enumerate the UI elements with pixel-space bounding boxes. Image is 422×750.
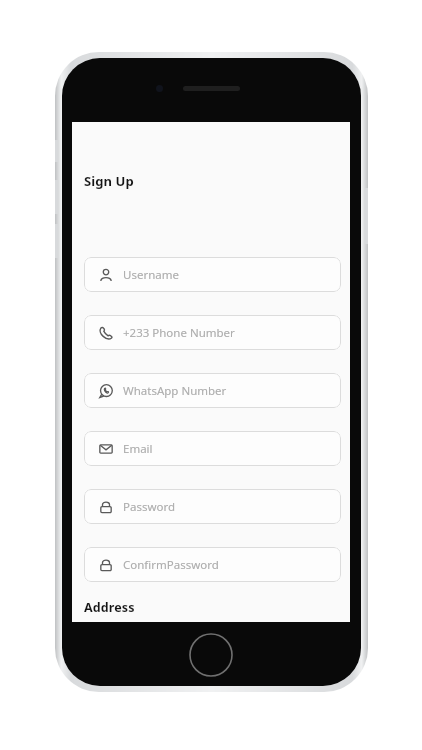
button[interactable]: Username (84, 257, 341, 292)
button[interactable]: WhatsApp Number (84, 373, 341, 408)
staticText: WhatsApp Number (123, 383, 227, 399)
staticText: ConfirmPassword (123, 557, 219, 573)
button[interactable]: Password (84, 489, 341, 524)
staticText: Password (123, 499, 176, 515)
button[interactable]: +233 Phone Number (84, 315, 341, 350)
staticText: Username (123, 267, 179, 283)
staticText: Email (123, 441, 153, 457)
staticText: Sign Up (84, 172, 134, 190)
staticText: +233 Phone Number (123, 325, 235, 341)
staticText: Address (84, 599, 135, 616)
button[interactable]: Home (189, 633, 233, 677)
button[interactable]: Email (84, 431, 341, 466)
button[interactable]: ConfirmPassword (84, 547, 341, 582)
